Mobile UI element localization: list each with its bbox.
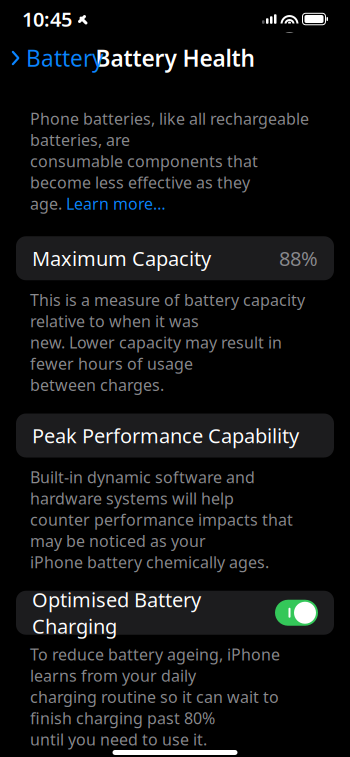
staticText: Peak Performance Capability <box>32 422 299 449</box>
staticText: counter performance impacts that may be … <box>30 509 293 551</box>
staticText: Built-in dynamic software and hardware s… <box>30 466 255 509</box>
staticText: Battery Health <box>95 43 254 73</box>
staticText: Battery <box>26 43 104 73</box>
staticText: This is a measure of battery capacity re… <box>30 289 305 332</box>
button[interactable]: Optimised Battery Charging <box>16 591 334 635</box>
staticText: Phone batteries, like all rechargeable b… <box>30 108 309 150</box>
staticText: consumable components that become less e… <box>30 150 258 193</box>
button[interactable]: Learn more… <box>66 193 166 214</box>
staticText: charging routine so it can wait to finis… <box>30 686 279 729</box>
button[interactable]: Peak Performance Capability <box>16 413 334 457</box>
staticText: until you need to use it. <box>30 729 207 750</box>
staticText: Maximum Capacity <box>32 245 211 272</box>
button[interactable]: Maximum Capacity <box>16 236 334 280</box>
staticText: age. <box>30 193 66 214</box>
staticText: Optimised Battery Charging <box>32 586 201 639</box>
button[interactable]: Battery <box>0 35 104 81</box>
staticText: new. Lower capacity may result in fewer … <box>30 332 282 374</box>
staticText: Learn more… <box>66 193 166 214</box>
staticText: To reduce battery ageing, iPhone learns … <box>30 644 280 686</box>
staticText: 88% <box>279 245 318 272</box>
staticText: between charges. <box>30 374 164 395</box>
staticText: 10:45 <box>22 6 72 32</box>
staticText: iPhone battery chemically ages. <box>30 551 269 573</box>
